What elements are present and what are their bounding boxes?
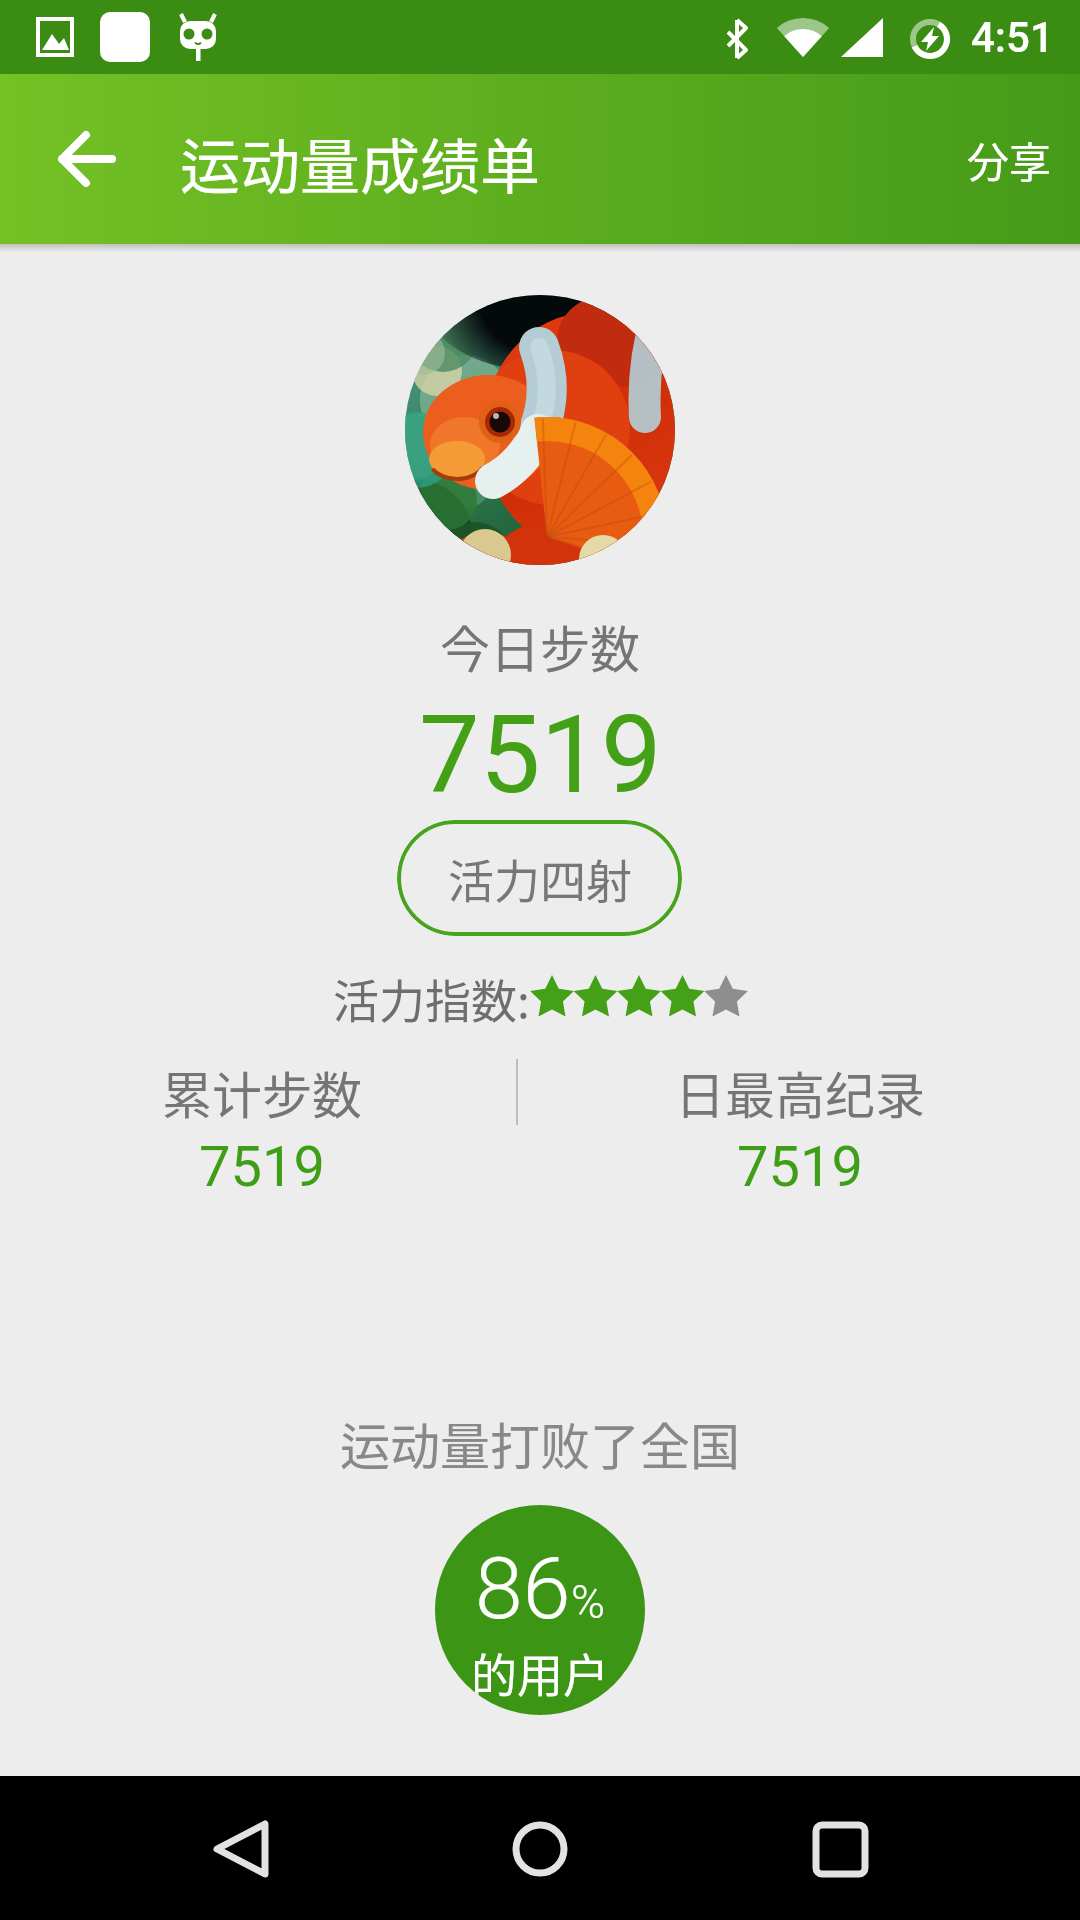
staticText: 活力四射 xyxy=(448,845,632,912)
staticText: 运动量成绩单 xyxy=(180,119,540,199)
staticText: 4:51 xyxy=(971,13,1054,62)
staticText: 86 xyxy=(475,1538,571,1639)
staticText: 日最高纪录 xyxy=(675,1056,925,1128)
button[interactable] xyxy=(27,99,147,219)
button[interactable]: 分享 xyxy=(942,119,1077,199)
staticText: 7519 xyxy=(737,1134,863,1200)
staticText: 累计步数 xyxy=(162,1056,362,1128)
staticText: 7519 xyxy=(199,1134,325,1200)
button[interactable] xyxy=(180,1788,300,1908)
staticText: 活力指数: xyxy=(333,965,530,1032)
staticText: 运动量打败了全国 xyxy=(340,1407,740,1479)
button[interactable]: 活力四射 xyxy=(397,820,682,936)
staticText: 今日步数 xyxy=(440,610,640,682)
staticText: 分享 xyxy=(967,129,1052,190)
staticText: 7519 xyxy=(419,692,662,810)
staticText: 的用户 xyxy=(471,1639,609,1706)
staticText: % xyxy=(571,1575,606,1629)
button[interactable] xyxy=(480,1788,600,1908)
button[interactable] xyxy=(780,1788,900,1908)
